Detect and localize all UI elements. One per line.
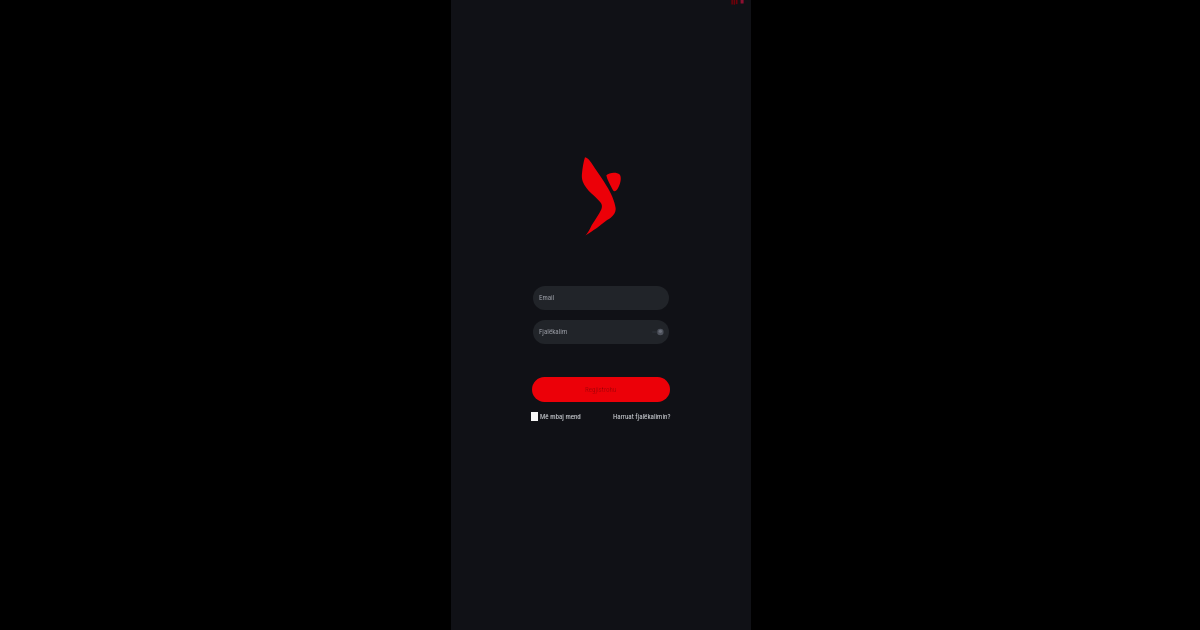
button[interactable]: Show password xyxy=(650,327,663,337)
staticText: Harruat fjalëkalimin? xyxy=(613,413,671,421)
button[interactable]: Regjistrohu xyxy=(532,377,670,402)
staticText: Regjistrohu xyxy=(585,386,617,394)
button[interactable]: Fjalëkalim xyxy=(533,320,669,344)
staticText: Fjalëkalim xyxy=(539,328,568,336)
staticText: Më mbaj mend xyxy=(540,413,581,421)
button[interactable]: Email xyxy=(533,286,669,310)
button[interactable]: Harruat fjalëkalimin? xyxy=(613,413,671,421)
staticText: Email xyxy=(539,294,555,302)
button[interactable]: Më mbaj mend xyxy=(531,412,581,421)
